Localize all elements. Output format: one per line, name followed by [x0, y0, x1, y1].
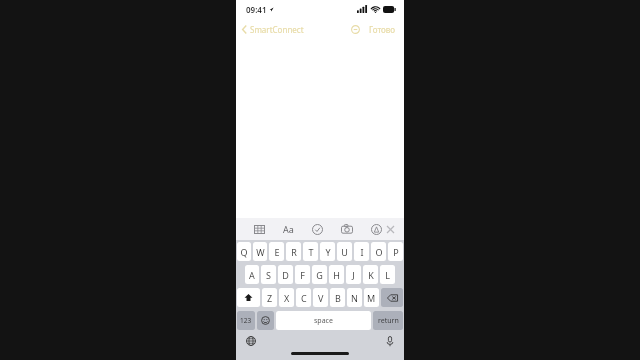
button[interactable]: Emoji — [257, 311, 274, 330]
button[interactable]: Q — [237, 242, 251, 261]
button[interactable]: N — [347, 288, 362, 307]
staticText: X — [284, 292, 290, 304]
button[interactable]: Collapse — [348, 22, 363, 37]
button[interactable]: V — [313, 288, 328, 307]
staticText: J — [352, 269, 355, 281]
staticText: SmartConnect — [250, 24, 304, 35]
button[interactable]: Dictate — [384, 334, 396, 349]
button[interactable]: A — [245, 265, 259, 284]
button[interactable]: space — [276, 311, 371, 330]
button[interactable]: U — [337, 242, 352, 261]
staticText: space — [314, 316, 333, 326]
button[interactable]: C — [296, 288, 311, 307]
staticText: H — [333, 269, 340, 281]
staticText: B — [335, 292, 341, 304]
staticText: P — [393, 246, 399, 258]
staticText: Aa — [283, 223, 294, 235]
button[interactable]: Aa — [281, 221, 296, 237]
button[interactable]: Checklist — [310, 222, 325, 237]
button[interactable]: Z — [262, 288, 277, 307]
button[interactable]: Close — [384, 223, 397, 236]
button[interactable]: D — [278, 265, 293, 284]
button[interactable]: J — [346, 265, 361, 284]
button[interactable]: Y — [320, 242, 335, 261]
staticText: L — [385, 269, 390, 281]
staticText: return — [378, 316, 399, 326]
button[interactable]: O — [371, 242, 386, 261]
staticText: Z — [267, 292, 273, 304]
button[interactable]: SmartConnect — [236, 21, 310, 38]
button[interactable]: R — [286, 242, 301, 261]
staticText: G — [316, 269, 323, 281]
staticText: V — [318, 292, 324, 304]
staticText: 09:41 — [246, 4, 267, 15]
button[interactable]: K — [363, 265, 378, 284]
staticText: D — [282, 269, 289, 281]
button[interactable]: H — [329, 265, 344, 284]
staticText: U — [341, 246, 348, 258]
staticText: A — [249, 269, 255, 281]
staticText: F — [300, 269, 305, 281]
staticText: R — [291, 246, 297, 258]
button[interactable]: T — [303, 242, 318, 261]
staticText: K — [368, 269, 374, 281]
button[interactable]: E — [269, 242, 284, 261]
button[interactable]: L — [380, 265, 395, 284]
staticText: C — [301, 292, 307, 304]
button[interactable]: Camera — [339, 222, 355, 236]
button[interactable]: Change keyboard — [244, 334, 258, 348]
button[interactable]: B — [330, 288, 345, 307]
button[interactable]: Готово — [366, 21, 399, 38]
staticText: W — [256, 246, 265, 258]
button[interactable]: P — [388, 242, 403, 261]
button[interactable]: I — [354, 242, 369, 261]
button[interactable]: Backspace — [381, 288, 403, 307]
staticText: N — [351, 292, 358, 304]
staticText: M — [367, 292, 376, 304]
button[interactable]: 123 — [237, 311, 255, 330]
staticText: 123 — [240, 316, 252, 325]
button[interactable]: W — [253, 242, 267, 261]
staticText: S — [266, 269, 271, 281]
staticText: T — [308, 246, 314, 258]
staticText: Q — [240, 246, 248, 258]
button[interactable]: Table — [252, 222, 267, 237]
staticText: I — [360, 246, 364, 258]
button[interactable]: M — [364, 288, 379, 307]
staticText: O — [375, 246, 383, 258]
button[interactable]: Shift — [237, 288, 260, 307]
button[interactable]: S — [261, 265, 276, 284]
button[interactable]: G — [312, 265, 327, 284]
button[interactable]: F — [295, 265, 310, 284]
staticText: Готово — [369, 24, 396, 35]
button[interactable]: Markup — [369, 222, 384, 237]
button[interactable]: X — [279, 288, 294, 307]
staticText: Y — [325, 246, 331, 258]
staticText: E — [274, 246, 280, 258]
button[interactable]: return — [373, 311, 403, 330]
